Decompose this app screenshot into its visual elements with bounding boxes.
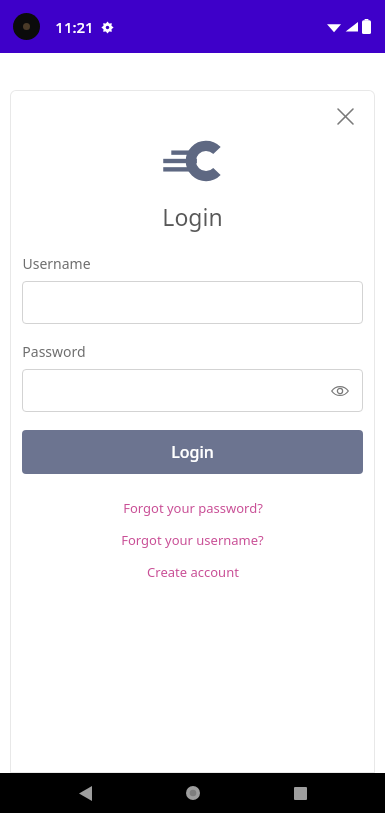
- button[interactable]: Show password: [22, 369, 363, 412]
- staticText: Username: [22, 254, 91, 273]
- button[interactable]: [22, 281, 363, 324]
- button[interactable]: Show password: [323, 374, 357, 408]
- staticText: Create account: [147, 563, 239, 581]
- staticText: Login: [171, 441, 214, 463]
- staticText: Login: [162, 201, 223, 232]
- staticText: Forgot your password?: [123, 499, 263, 517]
- button[interactable]: Recent apps: [277, 773, 323, 813]
- button[interactable]: Create account: [22, 563, 363, 581]
- button[interactable]: Home: [170, 773, 216, 813]
- button[interactable]: Forgot your username?: [22, 531, 363, 549]
- button[interactable]: Forgot your password?: [22, 499, 363, 517]
- button[interactable]: Login: [22, 430, 363, 474]
- staticText: Password: [22, 342, 86, 361]
- button[interactable]: Close: [325, 96, 365, 136]
- staticText: 11:21: [55, 17, 94, 37]
- staticText: Forgot your username?: [121, 531, 264, 549]
- button[interactable]: Back: [62, 773, 108, 813]
